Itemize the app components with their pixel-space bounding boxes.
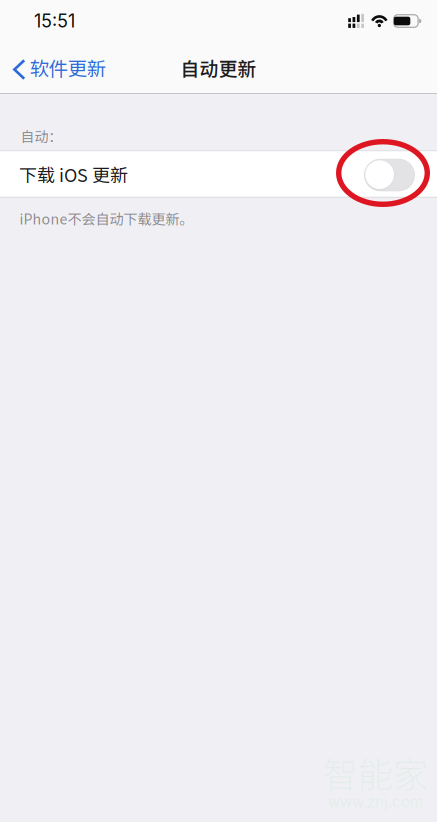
staticText: 智能家 [323,747,428,798]
staticText: 15:51 [34,10,75,32]
staticText: 软件更新 [30,53,106,82]
button[interactable]: 下载 iOS 更新 [0,151,437,197]
staticText: 自动： [20,126,62,146]
staticText: iPhone不会自动下载更新。 [19,208,193,229]
button[interactable]: 软件更新 [0,42,120,93]
staticText: 自动更新 [180,54,256,81]
staticText: 下载 iOS 更新 [19,161,128,187]
staticText: www.znj.com [328,793,423,811]
